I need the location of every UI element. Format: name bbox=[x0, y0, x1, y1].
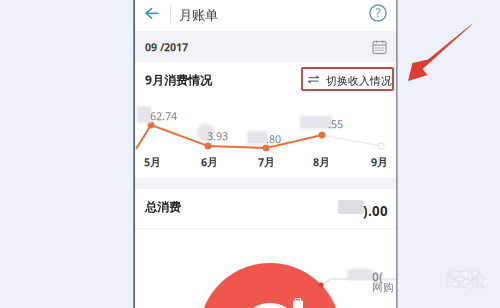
staticText: 9月消费情况 bbox=[145, 72, 212, 88]
staticText: 09 /2017 bbox=[145, 40, 188, 54]
button[interactable]: 09 /2017 bbox=[135, 31, 396, 62]
staticText: 总消费 bbox=[145, 200, 181, 215]
staticText: .55 bbox=[328, 117, 343, 131]
button[interactable]: Back bbox=[135, 0, 166, 31]
staticText: 切换收入情况 bbox=[326, 74, 392, 88]
staticText: 5月 bbox=[144, 155, 161, 169]
staticText: ).00 bbox=[363, 202, 388, 220]
staticText: 经验 bbox=[446, 268, 486, 293]
staticText: 62.74 bbox=[150, 109, 177, 123]
staticText: 月账单 bbox=[179, 7, 218, 23]
staticText: .80 bbox=[266, 132, 281, 146]
staticText: 3.93 bbox=[207, 129, 228, 143]
staticText: 8月 bbox=[313, 155, 330, 169]
staticText: 7月 bbox=[258, 155, 275, 169]
staticText: 0( bbox=[372, 269, 383, 285]
staticText: 6月 bbox=[201, 155, 218, 169]
staticText: 网购 bbox=[372, 281, 394, 294]
button[interactable]: Help bbox=[365, 0, 391, 26]
staticText: 9月 bbox=[371, 155, 388, 169]
button[interactable]: 切换收入情况 bbox=[304, 70, 390, 89]
staticText: ? bbox=[375, 4, 380, 20]
